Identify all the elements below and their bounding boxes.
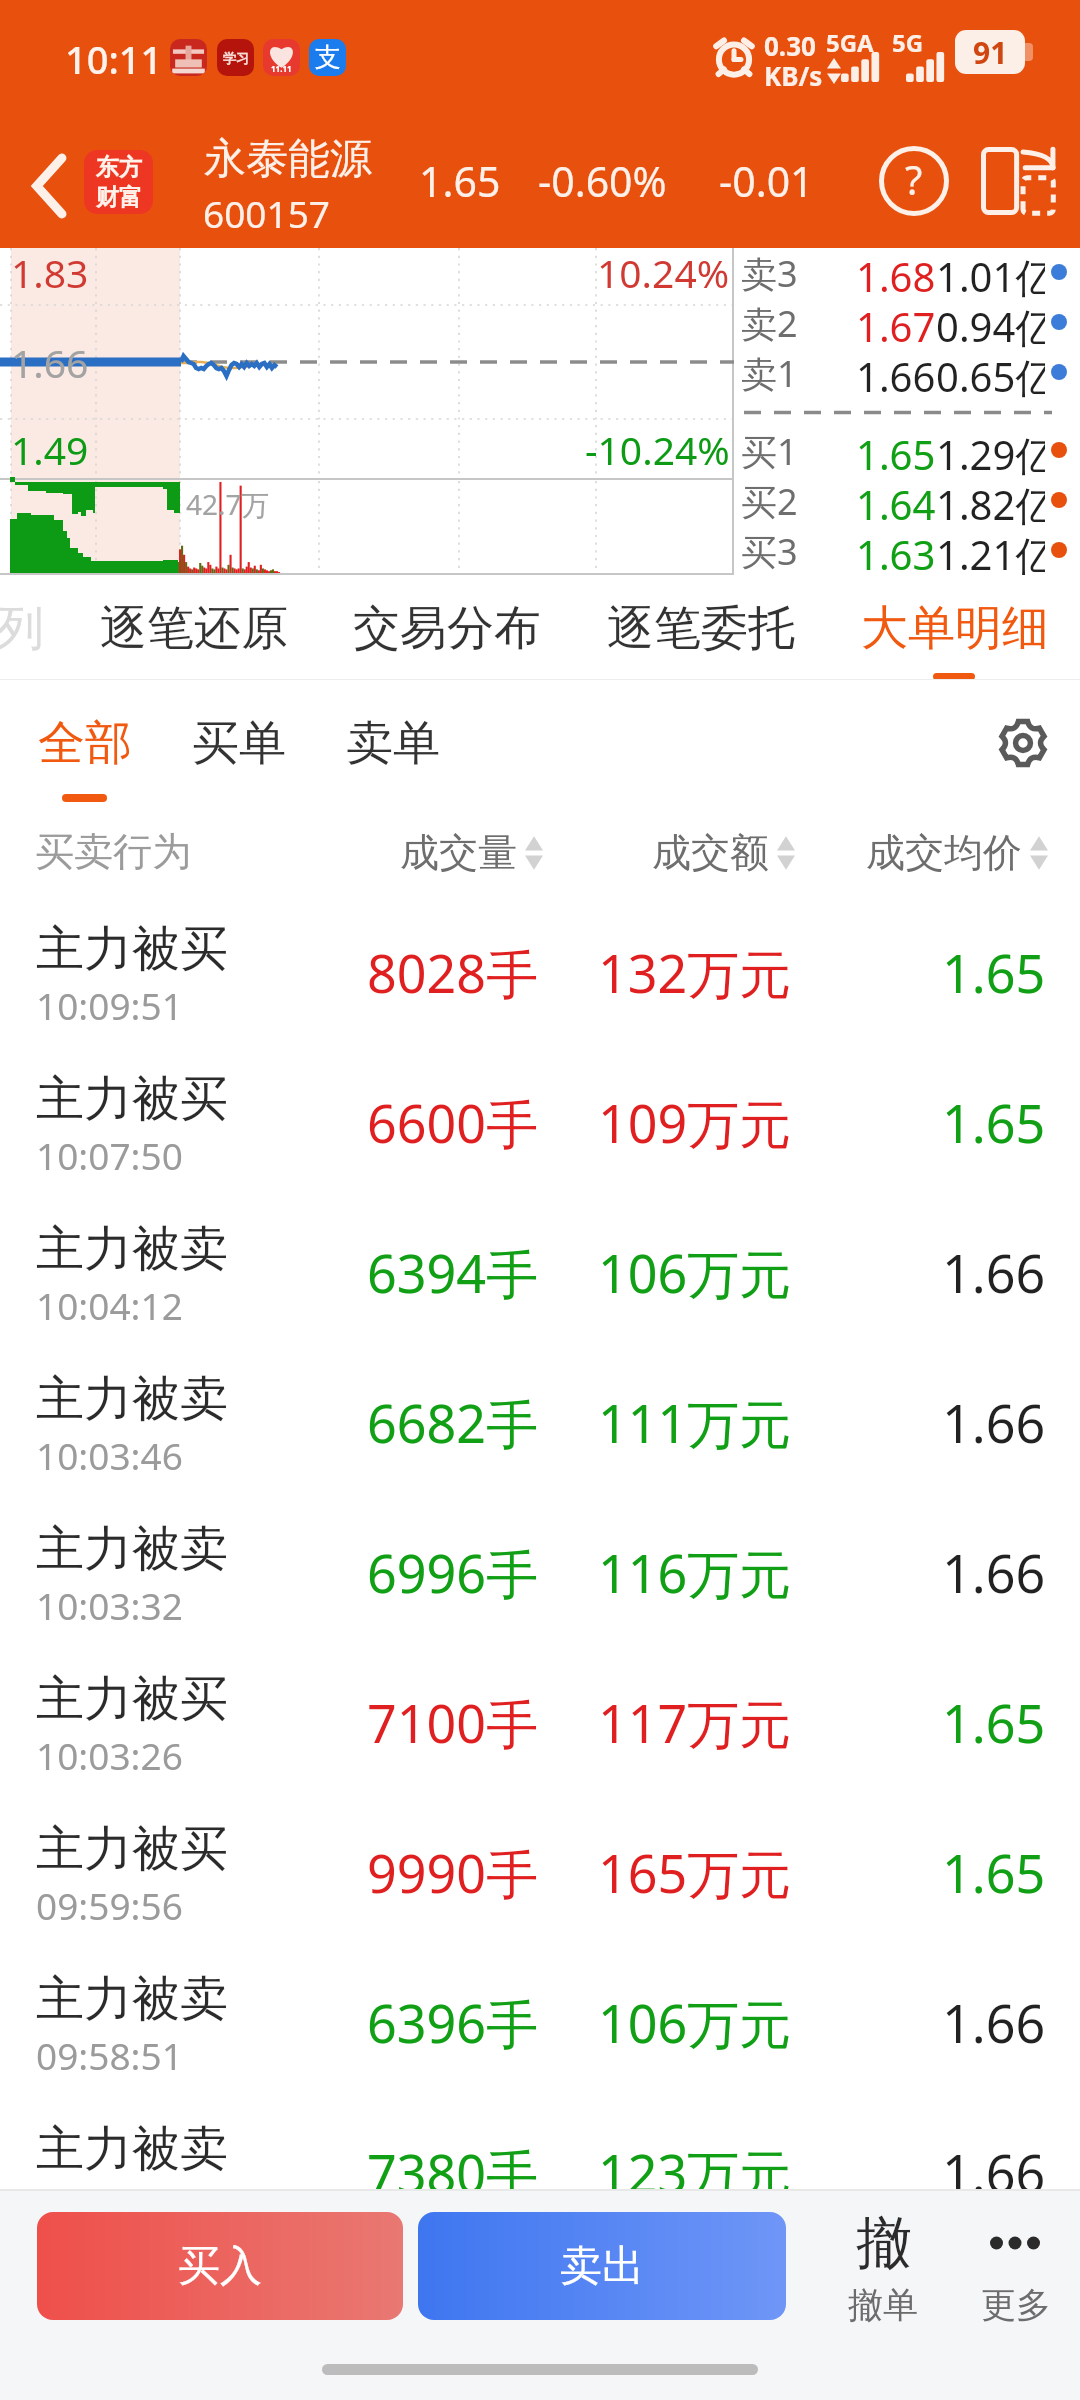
staticText: 1.65 (419, 153, 501, 209)
staticText: 6600手 (367, 1087, 538, 1158)
staticText: 1.63 (856, 527, 936, 576)
button[interactable]: Settings (979, 699, 1067, 787)
button[interactable]: 逐笔还原 (94, 593, 294, 664)
staticText: 0.30 (764, 28, 816, 63)
staticText: 成交均价 (866, 828, 1022, 877)
staticText: 主力被卖 (36, 2119, 228, 2179)
staticText: 123万元 (598, 2137, 792, 2189)
staticText: 买2 (741, 477, 798, 526)
button[interactable]: 买入 (37, 2212, 403, 2320)
staticText: 1.64 (856, 477, 936, 527)
staticText: 成交量 (400, 828, 517, 877)
staticText: 交易分布 (353, 599, 541, 658)
staticText: 8028手 (367, 937, 538, 1008)
button[interactable]: 主力被买 (0, 1628, 1080, 1778)
staticText: 1.66 (942, 1387, 1046, 1458)
staticText: 1.65 (942, 1837, 1046, 1908)
staticText: 支 (315, 41, 341, 74)
staticText: 117万元 (598, 1687, 792, 1758)
button[interactable]: 更多 (958, 2201, 1078, 2333)
staticText: 买3 (741, 527, 798, 576)
staticText: 主力被买 (36, 919, 228, 979)
staticText: 6394手 (367, 1237, 538, 1308)
staticText: 1.65 (942, 1687, 1046, 1758)
staticText: 卖1 (741, 349, 798, 398)
button[interactable]: 主力被卖 (0, 1478, 1080, 1628)
staticText: 主力被卖 (36, 1219, 228, 1279)
button[interactable]: 卖1 (734, 348, 1080, 398)
staticText: 6996手 (367, 1537, 538, 1608)
staticText: 1.49 (11, 423, 89, 476)
staticText: 91 (973, 32, 1008, 73)
staticText: 106万元 (598, 1987, 792, 2058)
staticText: 1.65 (856, 427, 936, 477)
button[interactable]: 逐笔委托 (601, 593, 801, 664)
staticText: 0.65亿 (936, 349, 1045, 399)
button[interactable]: 买2 (734, 476, 1080, 526)
staticText: 主力被买 (36, 1069, 228, 1129)
button[interactable]: Back (13, 136, 85, 236)
button[interactable]: 主力被卖 (0, 1928, 1080, 2078)
button[interactable]: 成交均价 (862, 826, 1052, 879)
button[interactable]: 列 (0, 593, 50, 664)
staticText: 132万元 (598, 937, 792, 1008)
staticText: 1.66 (942, 2137, 1046, 2189)
staticText: 财富 (96, 183, 142, 212)
staticText: 09:59:56 (36, 1880, 183, 1930)
staticText: 5G (892, 26, 924, 59)
staticText: 1.67 (856, 299, 936, 349)
button[interactable]: 买单 (176, 708, 302, 779)
staticText: 1.65 (942, 1087, 1046, 1158)
staticText: 1.82亿 (936, 477, 1045, 527)
button[interactable]: 主力被卖 (0, 1178, 1080, 1328)
staticText: ? (905, 152, 923, 206)
button[interactable]: 主力被买 (0, 1778, 1080, 1928)
staticText: -0.60% (538, 153, 667, 209)
button[interactable]: 成交量 (396, 826, 547, 879)
staticText: KB/s (764, 58, 823, 93)
staticText: 买1 (741, 427, 798, 476)
staticText: 列 (0, 599, 44, 658)
button[interactable]: 卖出 (418, 2212, 786, 2320)
button[interactable]: 主力被买 (0, 878, 1080, 1028)
staticText: 卖单 (346, 714, 440, 773)
button[interactable]: 大单明细 (855, 593, 1055, 664)
staticText: 10:04:12 (36, 1280, 183, 1330)
staticText: 1.66 (942, 1537, 1046, 1608)
button[interactable]: Help (869, 136, 959, 226)
button[interactable]: 交易分布 (347, 593, 547, 664)
staticText: -0.01 (719, 153, 814, 209)
button[interactable]: 主力被卖 (0, 1328, 1080, 1478)
button[interactable]: Switch layout (972, 137, 1064, 221)
staticText: 10:03:32 (36, 1580, 183, 1630)
staticText: 卖2 (741, 299, 798, 348)
staticText: 1.01亿 (936, 249, 1045, 299)
staticText: 111万元 (598, 1387, 792, 1458)
staticText: 10:03:46 (36, 1430, 183, 1480)
button[interactable]: 撤 (830, 2201, 950, 2333)
button[interactable]: 主力被卖 (0, 2078, 1080, 2189)
button[interactable]: 买1 (734, 426, 1080, 476)
button[interactable]: 东方 (84, 150, 153, 214)
button[interactable]: 主力被买 (0, 1028, 1080, 1178)
staticText: 1.66 (942, 1987, 1046, 2058)
button[interactable]: 全部 (22, 708, 148, 779)
staticText: 大单明细 (861, 599, 1049, 658)
staticText: 0.94亿 (936, 299, 1045, 349)
button[interactable]: 买3 (734, 526, 1080, 575)
staticText: 全部 (38, 714, 132, 773)
staticText: 165万元 (598, 1837, 792, 1908)
button[interactable]: 成交额 (648, 826, 799, 879)
staticText: 主力被买 (36, 1669, 228, 1729)
staticText: 1.29亿 (936, 427, 1045, 477)
staticText: 1.68 (856, 249, 936, 299)
staticText: 5GA (826, 26, 874, 59)
button[interactable]: 卖2 (734, 298, 1080, 348)
staticText: 成交额 (652, 828, 769, 877)
staticText: 6396手 (367, 1987, 538, 2058)
button[interactable]: 卖3 (734, 248, 1080, 298)
button[interactable]: 卖单 (330, 708, 456, 779)
staticText: -10.24% (585, 423, 730, 476)
staticText: 主力被卖 (36, 1969, 228, 2029)
